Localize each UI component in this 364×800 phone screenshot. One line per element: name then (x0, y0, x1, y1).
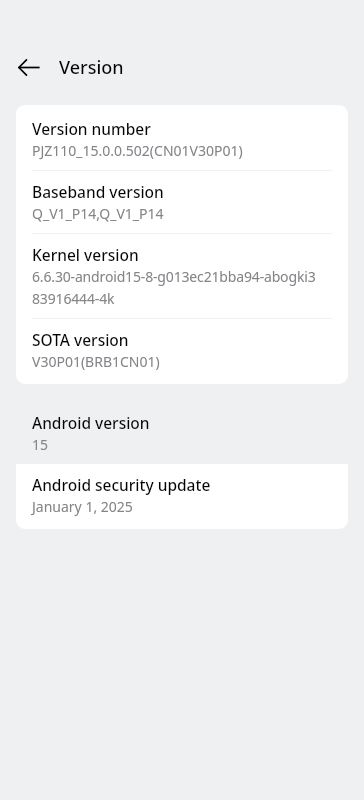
staticText: Version (59, 55, 124, 79)
button[interactable]: Kernel version (16, 234, 348, 319)
button[interactable]: Baseband version (16, 171, 348, 234)
staticText: 15 (32, 435, 49, 454)
button[interactable]: Android security update (16, 464, 348, 526)
staticText: Baseband version (32, 181, 164, 202)
staticText: January 1, 2025 (32, 497, 133, 516)
staticText: SOTA version (32, 329, 129, 350)
button[interactable]: Android version (16, 402, 348, 464)
staticText: Version number (32, 118, 151, 139)
staticText: Android security update (32, 474, 211, 495)
staticText: Android version (32, 412, 150, 433)
staticText: Q_V1_P14,Q_V1_P14 (32, 204, 164, 223)
staticText: 6.6.30-android15-8-g013ec21bba94-abogki3… (32, 267, 316, 308)
staticText: V30P01(BRB1CN01) (32, 352, 160, 371)
button[interactable]: Version number (16, 108, 348, 171)
staticText: Kernel version (32, 244, 139, 265)
staticText: PJZ110_15.0.0.502(CN01V30P01) (32, 141, 243, 160)
button[interactable]: Back (17, 55, 41, 79)
button[interactable]: SOTA version (16, 319, 348, 381)
